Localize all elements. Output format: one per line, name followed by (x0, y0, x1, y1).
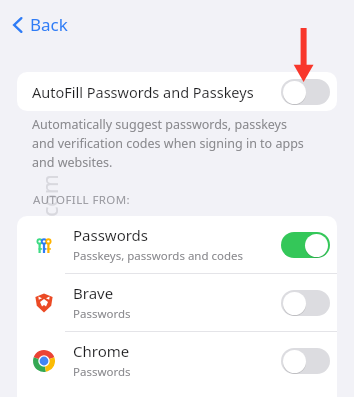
staticText: Chrome (73, 341, 130, 361)
staticText: Passwords (73, 364, 131, 380)
button[interactable]: Passwords (17, 216, 337, 273)
button[interactable]: Toggle off (281, 79, 330, 105)
staticText: Passwords (73, 225, 149, 245)
button[interactable]: AutoFill Passwords and Passkeys (17, 72, 337, 111)
staticText: Automatically suggest passwords, passkey… (32, 116, 304, 171)
staticText: AUTOFILL FROM: (33, 192, 131, 208)
button[interactable]: Brave (17, 274, 337, 331)
button[interactable]: Chrome (17, 332, 337, 389)
button[interactable]: Toggle on (281, 232, 330, 258)
staticText: Brave (73, 283, 114, 303)
staticText: AutoFill Passwords and Passkeys (32, 82, 254, 102)
button[interactable]: Toggle off (281, 348, 330, 374)
button[interactable]: Back (8, 10, 72, 39)
staticText: Passkeys, passwords and codes (73, 248, 244, 264)
staticText: Passwords (73, 306, 131, 322)
staticText: @thegeekpage.com (36, 174, 65, 371)
button[interactable]: Toggle off (281, 290, 330, 316)
staticText: Back (30, 13, 68, 36)
